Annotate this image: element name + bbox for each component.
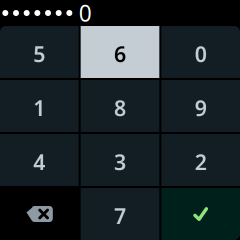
button[interactable]: 2 bbox=[161, 134, 240, 186]
staticText: 4 bbox=[33, 148, 45, 176]
staticText: 5 bbox=[33, 40, 45, 68]
staticText: 8 bbox=[114, 94, 126, 122]
staticText: 1 bbox=[33, 94, 45, 122]
staticText: 7 bbox=[114, 202, 126, 230]
button[interactable]: 7 bbox=[81, 188, 159, 240]
button[interactable]: Delete bbox=[0, 188, 79, 240]
button[interactable]: 5 bbox=[0, 26, 79, 78]
staticText: 2 bbox=[195, 148, 207, 176]
button[interactable]: 4 bbox=[0, 134, 79, 186]
button[interactable]: 9 bbox=[161, 80, 240, 132]
staticText: 9 bbox=[195, 94, 207, 122]
button[interactable]: 0 bbox=[161, 26, 240, 78]
button[interactable]: 3 bbox=[81, 134, 159, 186]
button[interactable]: 8 bbox=[81, 80, 159, 132]
staticText: 3 bbox=[114, 148, 126, 176]
staticText: 6 bbox=[114, 40, 126, 68]
staticText: 0 bbox=[79, 0, 92, 28]
staticText: 0 bbox=[195, 40, 207, 68]
button[interactable]: 1 bbox=[0, 80, 79, 132]
button[interactable]: 6 bbox=[81, 26, 159, 78]
button[interactable]: Confirm passcode bbox=[161, 188, 240, 240]
